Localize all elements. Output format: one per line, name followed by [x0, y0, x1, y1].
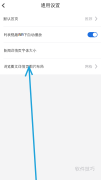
button[interactable]: 列表视频WiFi下自动播放: [0, 27, 101, 42]
staticText: 列表视频WiFi下自动播放: [3, 32, 42, 37]
button[interactable]: 浏览图文详情页图片布局: [0, 59, 101, 74]
button[interactable]: 新闻详情页字体大小: [0, 43, 101, 58]
staticText: 软件技巧: [75, 166, 95, 172]
staticText: 网格: [85, 64, 93, 69]
staticText: 默认首页: [3, 16, 18, 21]
button[interactable]: Back: [0, 0, 7, 11]
staticText: 新闻详情页字体大小: [3, 48, 37, 53]
staticText: 浏览图文详情页图片布局: [3, 64, 44, 69]
staticText: 通用设置: [41, 2, 60, 8]
button[interactable]: 默认首页: [0, 11, 101, 26]
staticText: 推荐: [85, 16, 93, 21]
